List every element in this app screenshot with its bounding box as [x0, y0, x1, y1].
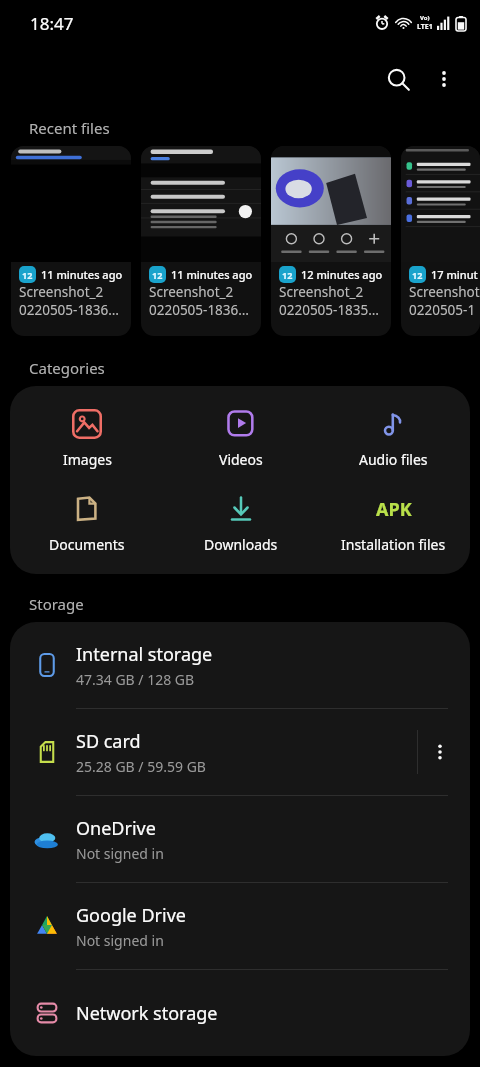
button[interactable]: Documents: [10, 487, 164, 558]
staticText: Storage: [29, 594, 84, 614]
staticText: 0220505-1836…: [19, 301, 119, 319]
staticText: Screenshot_2: [149, 283, 234, 301]
staticText: 25.28 GB / 59.59 GB: [76, 757, 206, 776]
staticText: Internal storage: [76, 642, 213, 667]
staticText: 0220505-1835…: [279, 301, 379, 319]
staticText: Google Drive: [76, 903, 186, 928]
staticText: APK: [376, 497, 412, 522]
staticText: Screenshot_2: [279, 283, 364, 301]
button[interactable]: Downloads: [164, 487, 317, 558]
staticText: 12: [412, 269, 423, 281]
button[interactable]: Videos: [164, 402, 317, 473]
button[interactable]: APK: [317, 487, 470, 558]
staticText: Categories: [29, 358, 105, 378]
staticText: 12: [282, 269, 293, 281]
button[interactable]: More options: [422, 57, 466, 101]
staticText: Not signed in: [76, 931, 164, 950]
staticText: Recent files: [29, 118, 110, 138]
button[interactable]: Search: [374, 55, 422, 103]
button[interactable]: OneDrive: [10, 796, 470, 882]
staticText: Screenshot_2: [19, 283, 104, 301]
staticText: Downloads: [204, 535, 278, 554]
staticText: Screenshot: [409, 283, 480, 301]
staticText: LTE1: [417, 22, 433, 32]
staticText: 12 minutes ago: [301, 267, 383, 282]
button[interactable]: Audio files: [317, 402, 470, 473]
staticText: Videos: [219, 450, 263, 469]
staticText: Images: [63, 450, 112, 469]
staticText: Installation files: [341, 535, 446, 554]
staticText: 11 minutes ago: [41, 267, 123, 282]
button[interactable]: 12: [271, 146, 391, 336]
staticText: Network storage: [76, 1001, 218, 1026]
staticText: SD card: [76, 729, 141, 754]
staticText: Audio files: [359, 450, 428, 469]
staticText: 12: [152, 269, 163, 281]
button[interactable]: 12: [401, 146, 480, 336]
button[interactable]: 12: [11, 146, 131, 336]
button[interactable]: Images: [10, 402, 164, 473]
button[interactable]: Google Drive: [10, 883, 470, 969]
staticText: 17 minut: [431, 267, 478, 282]
staticText: Not signed in: [76, 844, 164, 863]
staticText: 18:47: [30, 12, 74, 35]
staticText: 11 minutes ago: [171, 267, 253, 282]
staticText: 0220505-1: [409, 301, 476, 319]
staticText: 0220505-1836…: [149, 301, 249, 319]
staticText: OneDrive: [76, 816, 156, 841]
staticText: 47.34 GB / 128 GB: [76, 670, 195, 689]
button[interactable]: Internal storage: [10, 622, 470, 708]
button[interactable]: SD card: [10, 709, 470, 795]
staticText: Vo): [420, 14, 430, 22]
staticText: Documents: [49, 535, 125, 554]
button[interactable]: Network storage: [10, 970, 470, 1056]
button[interactable]: SD card options: [418, 730, 462, 774]
button[interactable]: 12: [141, 146, 261, 336]
staticText: 12: [22, 269, 33, 281]
